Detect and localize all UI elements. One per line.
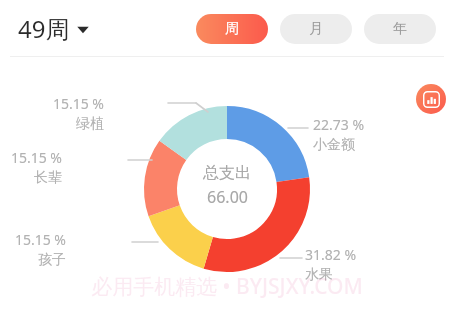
button[interactable]: 周 (196, 14, 268, 44)
button[interactable]: 月 (280, 14, 352, 44)
staticText: 15.15 % (0, 230, 66, 249)
button[interactable]: 49周 (14, 8, 94, 49)
staticText: 66.00 (207, 186, 248, 208)
staticText: 年 (393, 20, 407, 38)
button[interactable]: Statistics chart (416, 84, 446, 114)
staticText: 周 (225, 20, 239, 38)
staticText: 孩子 (0, 251, 66, 269)
staticText: 49周 (18, 12, 70, 45)
staticText: 31.82 % (305, 245, 405, 264)
staticText: 小金额 (313, 136, 413, 154)
staticText: 15.15 % (18, 94, 104, 113)
staticText: 绿植 (18, 115, 104, 133)
staticText: 15.15 % (0, 148, 62, 167)
staticText: 月 (309, 20, 323, 38)
staticText: 必用手机精选 • BYJSJXY.COM (91, 272, 363, 301)
staticText: 22.73 % (313, 115, 413, 134)
staticText: 水果 (305, 266, 405, 284)
staticText: 总支出 (203, 163, 251, 183)
staticText: 长辈 (0, 169, 62, 187)
button[interactable]: 年 (364, 14, 436, 44)
